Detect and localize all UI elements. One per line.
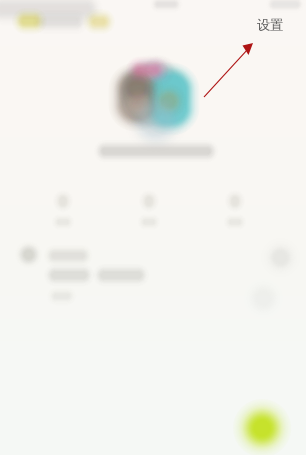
button[interactable]: 设置 (248, 15, 292, 35)
button[interactable]: Compose (233, 399, 291, 455)
staticText: 设置 (257, 17, 283, 33)
